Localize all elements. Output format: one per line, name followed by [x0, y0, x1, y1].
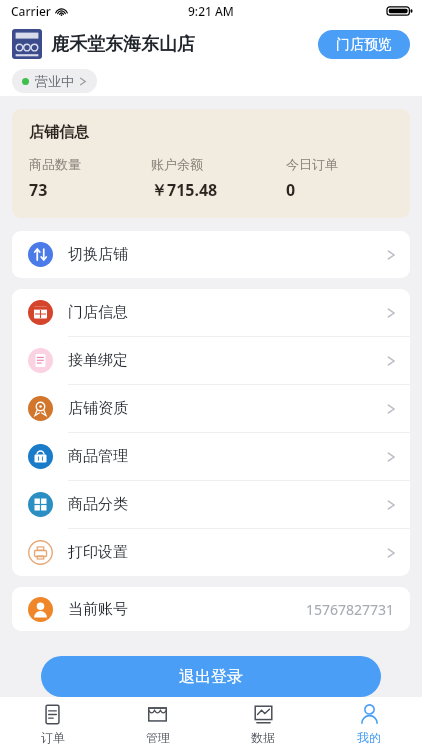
staticText: 商品分类 [68, 495, 128, 514]
staticText: Carrier [11, 3, 51, 19]
staticText: 当前账号 [68, 600, 128, 619]
staticText: 今日订单 [286, 156, 338, 172]
button[interactable]: 我的 [316, 697, 422, 750]
staticText: 订单 [41, 730, 65, 745]
button[interactable]: 门店预览 [318, 30, 410, 59]
staticText: 鹿禾堂东海东山店 [51, 33, 195, 56]
staticText: 店铺信息 [29, 123, 89, 142]
button[interactable]: 打印设置 [12, 529, 410, 576]
button[interactable]: 店铺资质 [12, 385, 410, 432]
button[interactable]: 接单绑定 [12, 337, 410, 384]
button[interactable]: 切换店铺 [12, 231, 410, 278]
staticText: 账户余额 [151, 156, 203, 172]
button[interactable]: 数据 [210, 697, 316, 750]
staticText: 切换店铺 [68, 245, 128, 264]
button[interactable]: 当前账号 [12, 587, 410, 631]
staticText: 73 [29, 179, 48, 201]
staticText: 商品管理 [68, 447, 128, 466]
staticText: 门店信息 [68, 303, 128, 322]
button[interactable]: 门店信息 [12, 289, 410, 336]
staticText: 门店预览 [336, 36, 392, 54]
staticText: 0 [286, 179, 296, 201]
button[interactable]: 退出登录 [41, 656, 381, 697]
button[interactable]: 商品管理 [12, 433, 410, 480]
staticText: 退出登录 [179, 667, 243, 687]
staticText: 营业中 [35, 73, 74, 89]
button[interactable]: 管理 [105, 697, 210, 750]
button[interactable]: 订单 [0, 697, 105, 750]
staticText: 商品数量 [29, 156, 81, 172]
staticText: 店铺资质 [68, 399, 128, 418]
button[interactable]: 商品分类 [12, 481, 410, 528]
staticText: 接单绑定 [68, 351, 128, 370]
staticText: ￥715.48 [151, 179, 218, 201]
staticText: 数据 [251, 730, 275, 745]
staticText: 9:21 AM [188, 3, 234, 19]
staticText: 打印设置 [68, 543, 128, 562]
button[interactable]: 营业中 [12, 69, 97, 93]
staticText: 15767827731 [306, 600, 395, 619]
staticText: 管理 [146, 730, 170, 745]
staticText: 我的 [357, 730, 381, 745]
